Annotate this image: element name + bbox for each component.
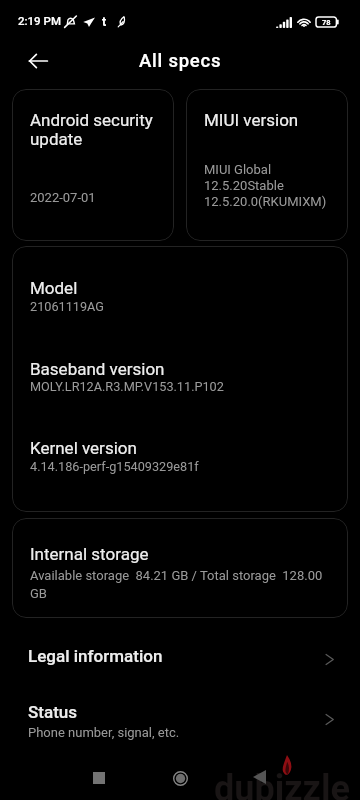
button[interactable]: Home [156,754,204,800]
staticText: Status [28,702,78,722]
staticText: 78 [322,18,331,27]
staticText: 2:19 PM [18,14,61,27]
button[interactable]: Status [0,702,360,758]
staticText: Model [30,278,78,298]
button[interactable]: Back [20,43,56,79]
staticText: dubizzle [214,768,350,800]
button[interactable]: Legal information [0,646,360,686]
staticText: Available storage 84.21 GB / Total stora… [30,568,330,601]
button[interactable]: Recents [75,754,123,800]
staticText: Baseband version [30,359,165,379]
staticText: MIUI version [204,110,299,130]
staticText: MIUI Global 12.5.20Stable 12.5.20.0(RKUM… [204,162,327,209]
staticText: MOLY.LR12A.R3.MP.V153.11.P102 [30,379,224,394]
staticText: 2022-07-01 [30,190,96,205]
button[interactable]: Back [235,753,283,800]
staticText: 21061119AG [30,299,104,314]
staticText: t [102,14,107,29]
staticText: Internal storage [30,544,149,564]
staticText: Legal information [28,646,163,666]
staticText: All specs [139,50,222,72]
staticText: Android security update [30,110,153,149]
staticText: Kernel version [30,438,137,458]
staticText: Phone number, signal, etc. [28,725,180,740]
staticText: 4.14.186-perf-g15409329e81f [30,459,199,474]
